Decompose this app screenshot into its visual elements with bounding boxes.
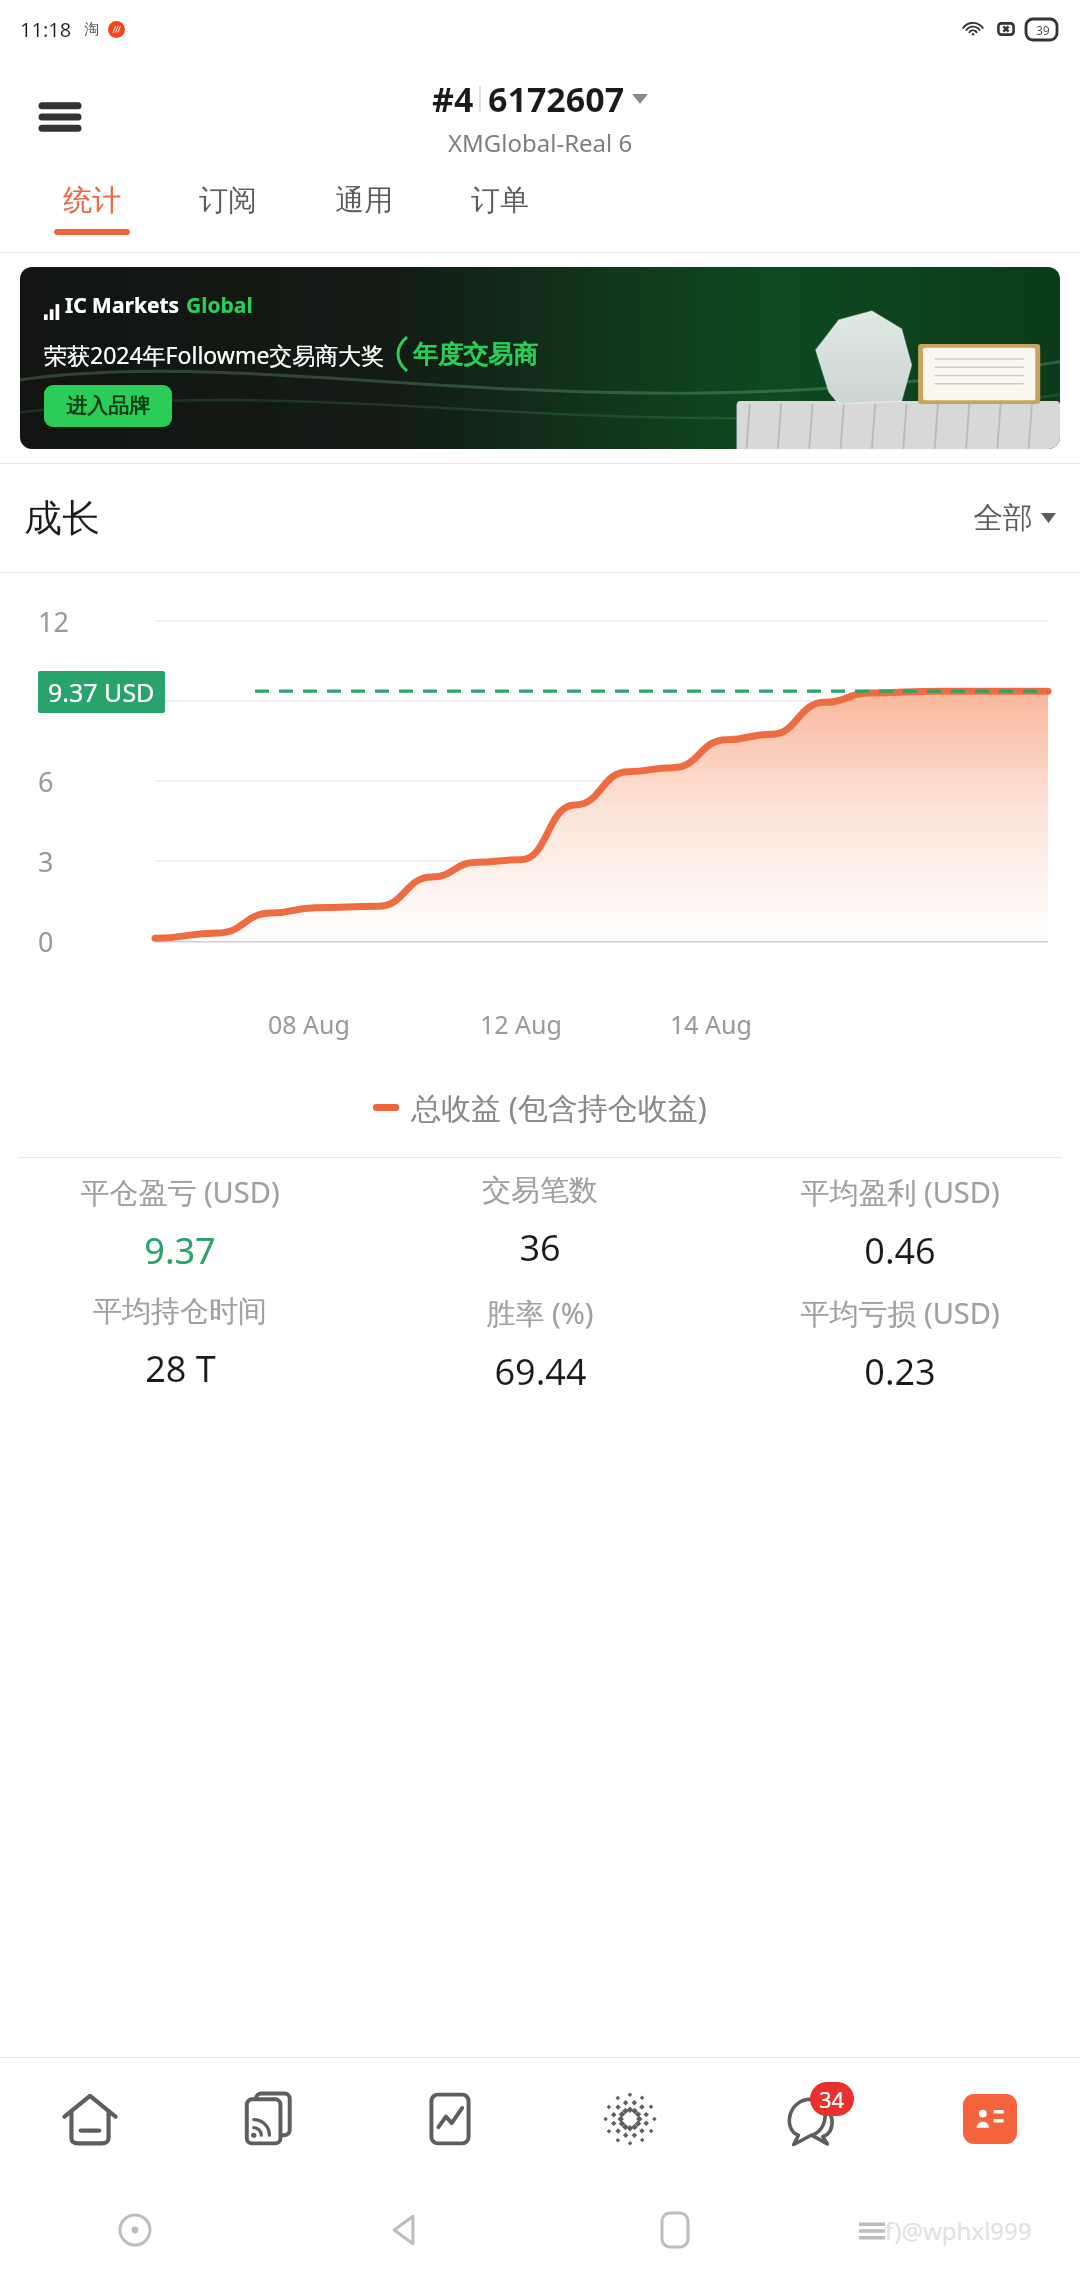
- staticText: XMGlobal-Real 6: [448, 126, 633, 159]
- staticText: 3: [38, 843, 54, 880]
- staticText: 08 Aug: [268, 1007, 350, 1041]
- staticText: 39: [1036, 22, 1050, 38]
- staticText: 平均亏损 (USD): [800, 1293, 1000, 1333]
- staticText: 订单: [471, 182, 529, 219]
- button[interactable]: Menu: [28, 85, 92, 149]
- staticText: 9.37 USD: [48, 675, 155, 709]
- staticText: 12: [38, 603, 69, 640]
- button[interactable]: IC Markets: [20, 267, 1060, 449]
- button[interactable]: 平均持仓时间: [0, 1293, 360, 1393]
- button[interactable]: Discover: [582, 2071, 678, 2167]
- staticText: 69.44: [494, 1347, 587, 1396]
- staticText: 进入品牌: [66, 393, 150, 419]
- button[interactable]: 胜率 (%): [360, 1293, 720, 1396]
- staticText: 平均持仓时间: [93, 1293, 267, 1330]
- button[interactable]: Profile: [942, 2071, 1038, 2167]
- button[interactable]: 通用: [296, 176, 432, 252]
- button[interactable]: Broadcast: [222, 2071, 318, 2167]
- staticText: 总收益 (包含持仓收益): [411, 1087, 707, 1128]
- staticText: 0.23: [864, 1347, 936, 1396]
- staticText: 36: [519, 1223, 561, 1272]
- staticText: #4: [432, 76, 474, 122]
- button[interactable]: 平均亏损 (USD): [720, 1293, 1080, 1396]
- staticText: 订阅: [199, 182, 257, 219]
- staticText: 12 Aug: [480, 1007, 562, 1041]
- button[interactable]: Home: [42, 2071, 138, 2167]
- button[interactable]: 订单: [432, 176, 568, 252]
- button[interactable]: 平均盈利 (USD): [720, 1172, 1080, 1275]
- staticText: 平仓盈亏 (USD): [80, 1172, 280, 1212]
- button[interactable]: #4: [432, 76, 648, 122]
- staticText: 6172607: [488, 76, 625, 122]
- staticText: 9: [38, 683, 54, 720]
- button[interactable]: 交易笔数: [360, 1172, 720, 1272]
- staticText: 9.37: [144, 1226, 216, 1275]
- staticText: 11:18: [20, 16, 72, 43]
- staticText: 0: [38, 923, 54, 960]
- staticText: 胜率 (%): [486, 1293, 594, 1333]
- button[interactable]: 全部: [973, 499, 1056, 537]
- staticText: 通用: [335, 182, 393, 219]
- staticText: 0.46: [864, 1226, 936, 1275]
- staticText: IC Markets: [65, 291, 180, 320]
- button[interactable]: 统计: [24, 176, 160, 252]
- button[interactable]: 平仓盈亏 (USD): [0, 1172, 360, 1275]
- staticText: 全部: [973, 499, 1033, 537]
- staticText: 34: [819, 2084, 845, 2114]
- staticText: 统计: [63, 182, 121, 219]
- staticText: 平均盈利 (USD): [800, 1172, 1000, 1212]
- staticText: 28 T: [145, 1344, 216, 1393]
- staticText: 年度交易商: [413, 339, 538, 370]
- staticText: 14 Aug: [670, 1007, 752, 1041]
- staticText: f)@wphxl999: [885, 2214, 1032, 2247]
- button[interactable]: 进入品牌: [66, 393, 150, 419]
- staticText: 6: [38, 763, 54, 800]
- staticText: 淘: [84, 20, 99, 39]
- button[interactable]: Markets: [402, 2071, 498, 2167]
- staticText: 交易笔数: [482, 1172, 598, 1209]
- staticText: 成长: [24, 494, 100, 542]
- staticText: Global: [186, 291, 253, 320]
- button[interactable]: Messages: [762, 2071, 858, 2167]
- staticText: 荣获2024年Followme交易商大奖: [44, 339, 385, 370]
- button[interactable]: 订阅: [160, 176, 296, 252]
